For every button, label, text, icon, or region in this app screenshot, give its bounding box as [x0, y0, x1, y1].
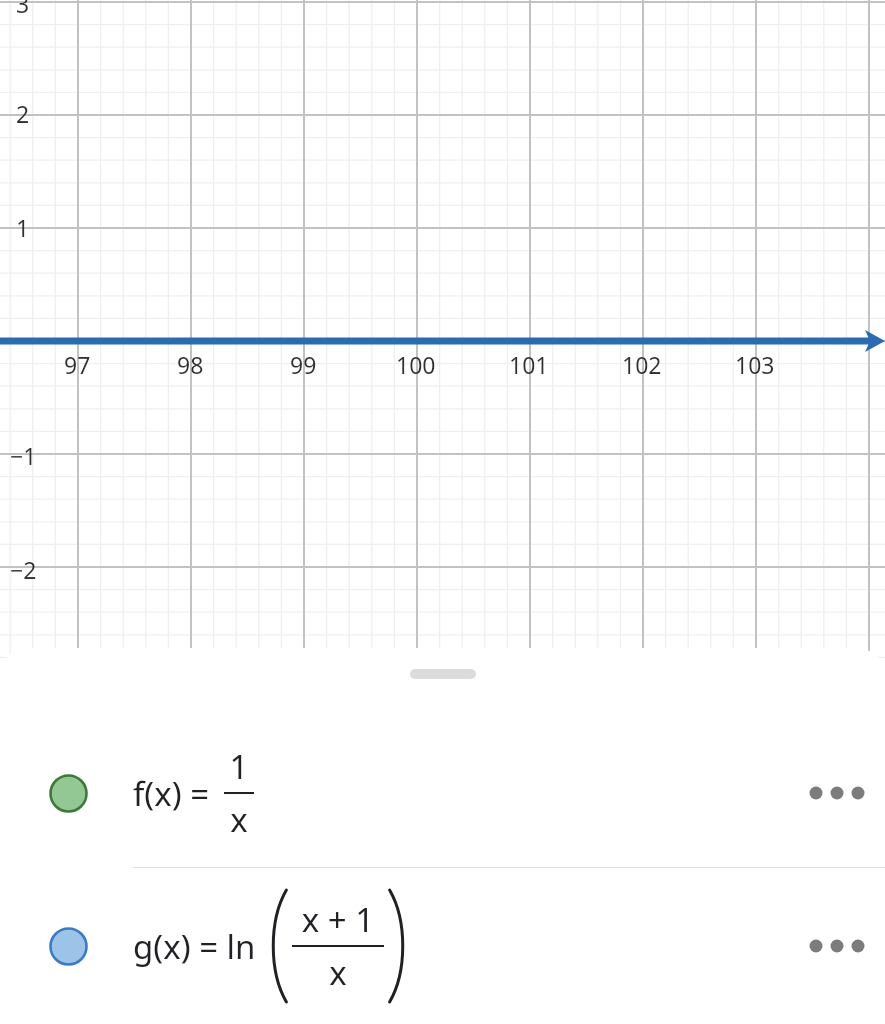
button[interactable]: More options — [789, 868, 885, 1024]
staticText: 99 — [290, 349, 317, 380]
staticText: x — [224, 797, 254, 842]
staticText: x + 1 — [292, 897, 384, 942]
staticText: 1 — [224, 744, 254, 789]
staticText: 101 — [509, 349, 549, 380]
staticText: 102 — [622, 349, 662, 380]
staticText: 100 — [396, 349, 436, 380]
button[interactable]: Toggle plot — [0, 868, 885, 1024]
staticText: 98 — [177, 349, 204, 380]
staticText: 2 — [16, 98, 30, 129]
staticText: −1 — [10, 440, 37, 471]
button[interactable]: Toggle plot — [49, 927, 88, 966]
staticText: 103 — [735, 349, 775, 380]
staticText: 97 — [64, 349, 91, 380]
staticText: x — [292, 950, 384, 995]
staticText: f(x) = — [133, 771, 210, 816]
staticText: 3 — [16, 0, 30, 19]
button[interactable]: More options — [789, 719, 885, 867]
button[interactable]: Toggle plot — [0, 719, 885, 867]
staticText: 1 — [16, 212, 30, 243]
staticText: g(x) = ln — [133, 924, 256, 969]
staticText: −2 — [10, 554, 37, 585]
button[interactable]: Toggle plot — [49, 774, 88, 813]
